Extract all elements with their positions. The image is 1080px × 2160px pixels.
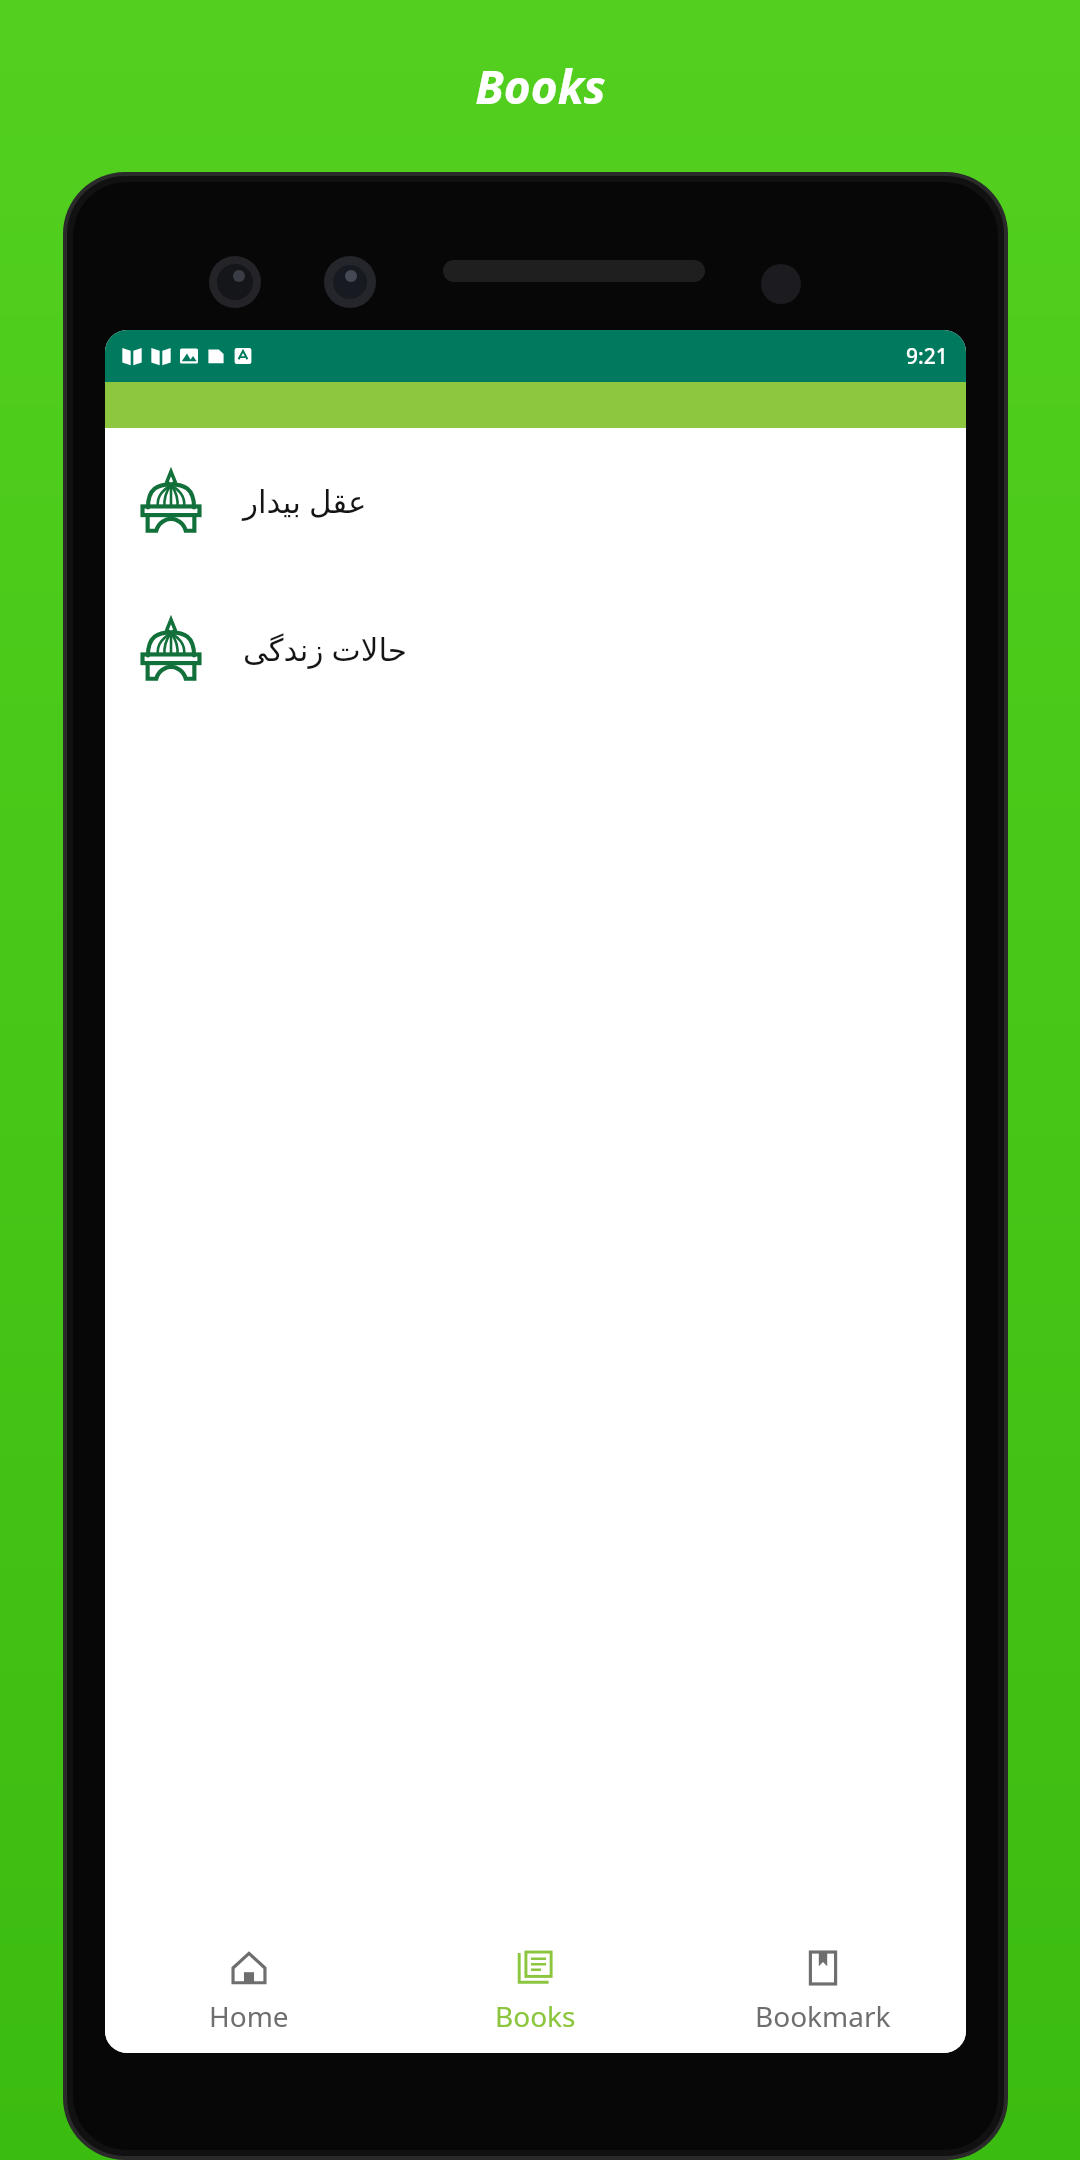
button[interactable]: Bookmark — [679, 1929, 966, 2053]
button[interactable]: حالات زندگی — [105, 596, 966, 702]
staticText: Books — [495, 1997, 576, 2035]
button[interactable]: Books — [392, 1929, 679, 2053]
staticText: عقل بیدار — [243, 480, 367, 522]
staticText: Home — [209, 1997, 289, 2035]
button[interactable]: عقل بیدار — [105, 448, 966, 554]
button[interactable]: Home — [105, 1929, 392, 2053]
staticText: Books — [475, 55, 606, 118]
staticText: حالات زندگی — [243, 628, 407, 670]
staticText: Bookmark — [755, 1997, 891, 2035]
staticText: 9:21 — [906, 342, 948, 371]
